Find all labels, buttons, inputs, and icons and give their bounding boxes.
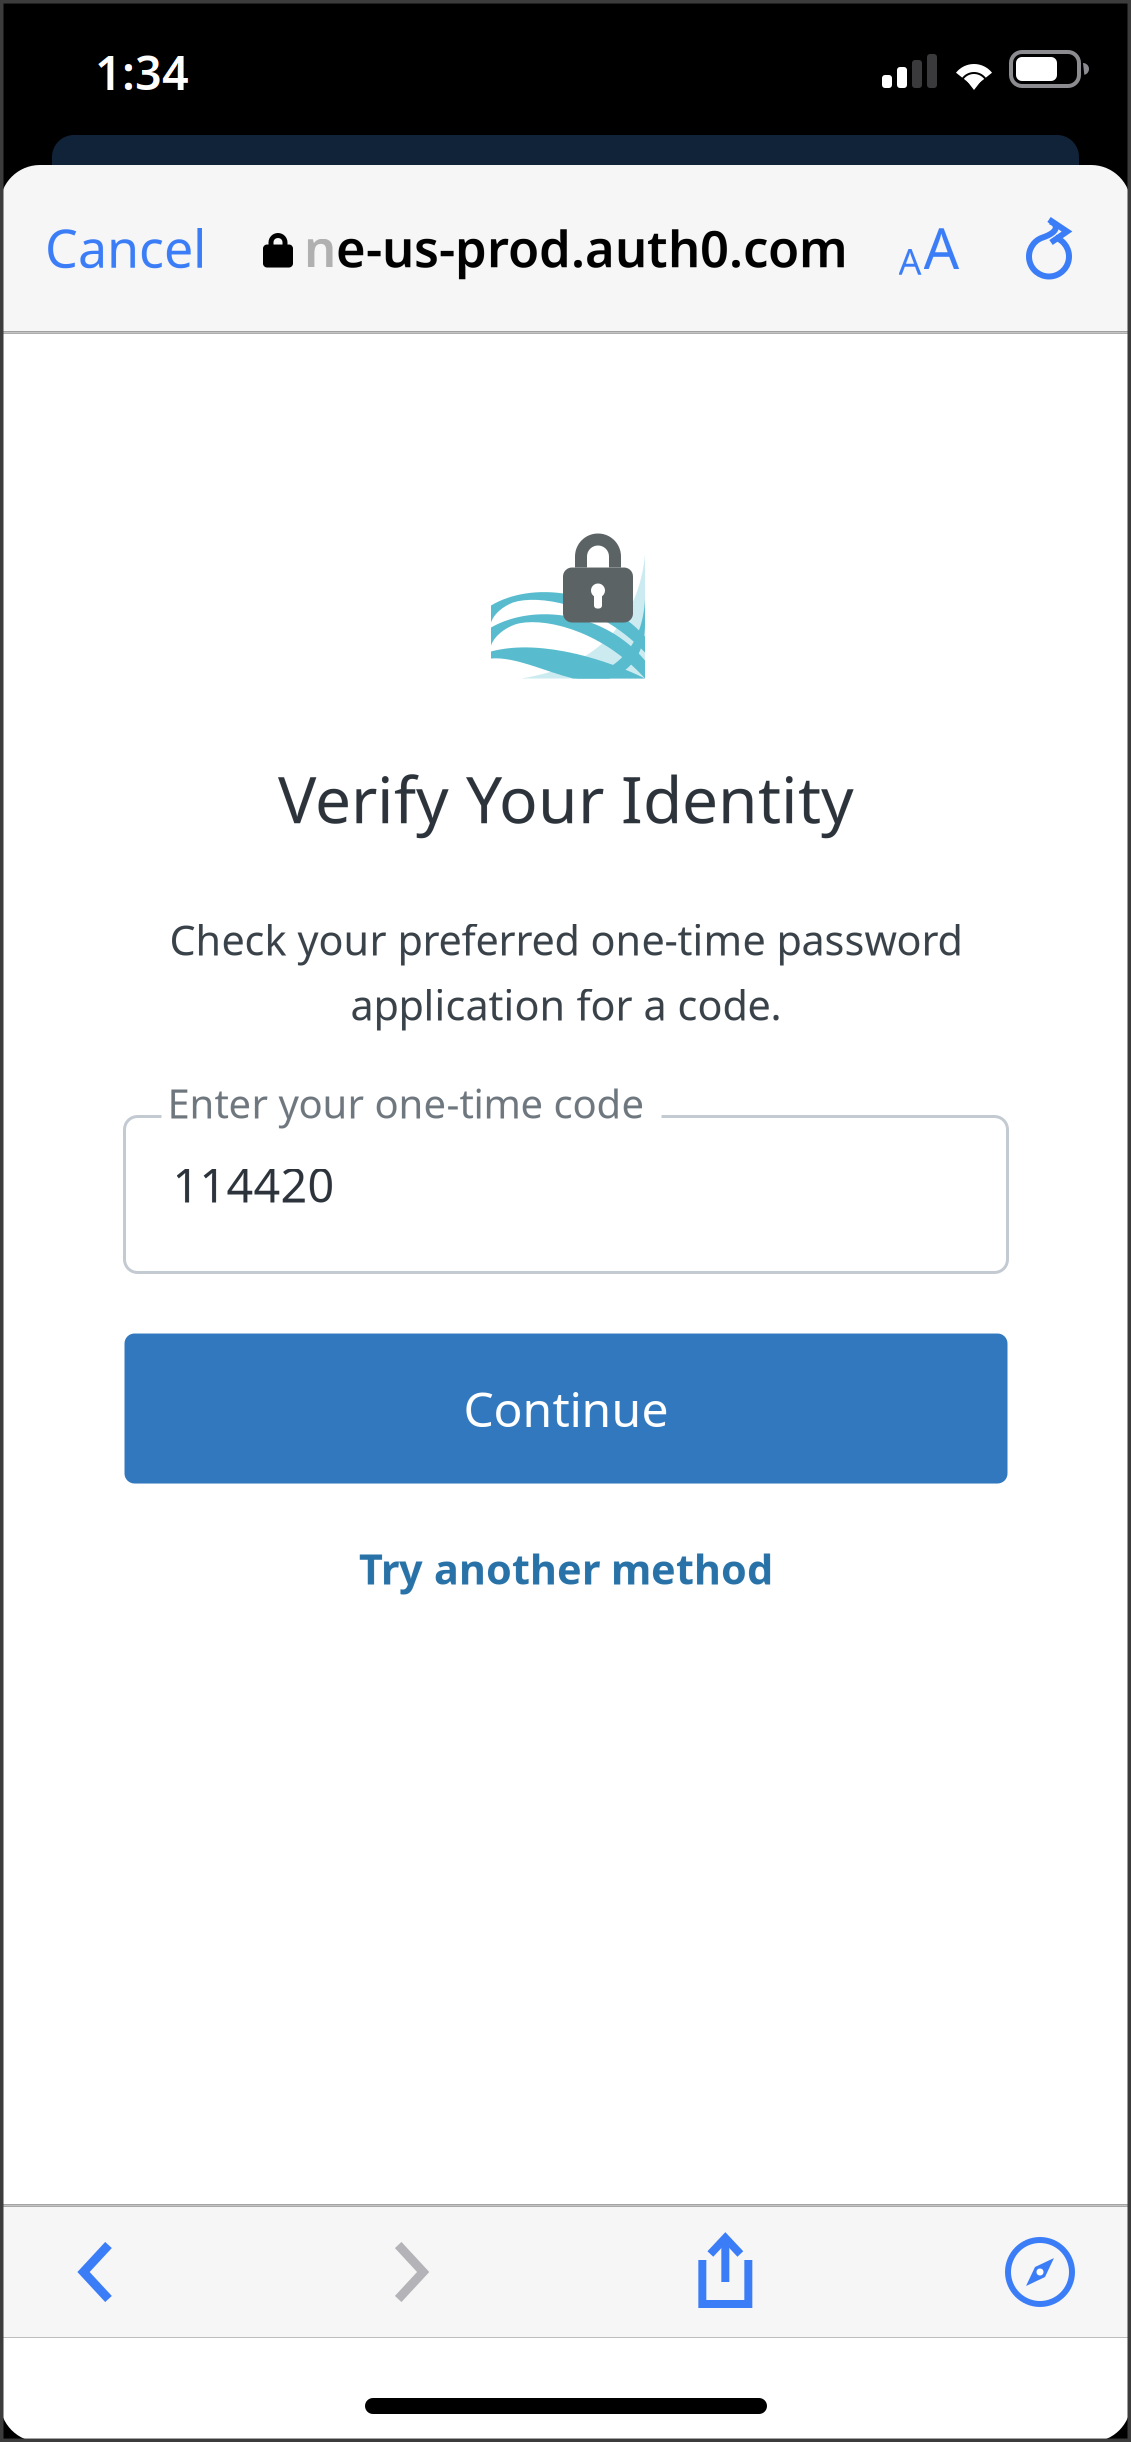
- staticText: Check your preferred one-time password: [169, 912, 962, 967]
- staticText: Enter your one-time code: [167, 1076, 644, 1130]
- button[interactable]: Cancel: [0, 163, 230, 331]
- staticText: Try another method: [359, 1541, 773, 1596]
- button[interactable]: Continue: [124, 1333, 1007, 1483]
- button[interactable]: Text size: [892, 163, 966, 331]
- staticText: application for a code.: [350, 977, 781, 1032]
- staticText: Continue: [463, 1377, 668, 1440]
- staticText: 114420: [172, 1153, 334, 1215]
- button[interactable]: Reload page: [966, 163, 1131, 331]
- staticText: Verify Your Identity: [278, 756, 854, 841]
- staticText: n: [304, 214, 336, 281]
- staticText: A: [923, 210, 959, 285]
- button[interactable]: Try another method: [124, 1520, 1007, 1616]
- staticText: e-us-prod.auth0.com: [336, 214, 848, 281]
- button[interactable]: Share: [655, 2206, 795, 2337]
- button[interactable]: Open in Safari: [970, 2206, 1110, 2337]
- staticText: Cancel: [45, 213, 206, 282]
- button[interactable]: Forward: [341, 2206, 481, 2337]
- button[interactable]: Back: [26, 2206, 166, 2337]
- staticText: 1:34: [95, 41, 189, 103]
- staticText: A: [898, 237, 921, 285]
- button[interactable]: n: [263, 163, 848, 331]
